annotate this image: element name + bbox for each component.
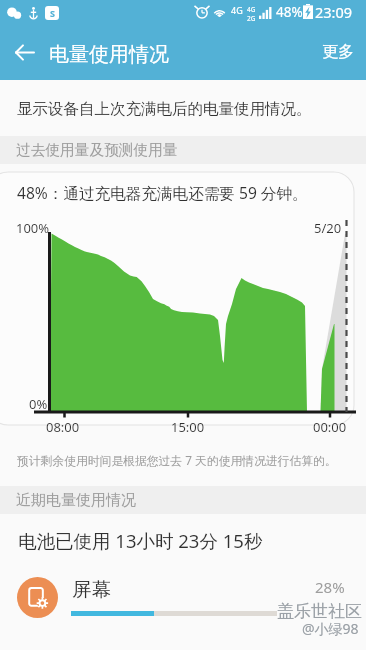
staticText: 00:00 (313, 418, 347, 436)
staticText: 显示设备自上次充满电后的电量使用情况。 (17, 99, 312, 119)
staticText: 盖乐世社区 (277, 601, 362, 622)
staticText: 48% (276, 3, 303, 21)
staticText: 电量使用情况 (49, 42, 169, 67)
staticText: @小绿98 (302, 619, 359, 638)
staticText: 更多 (322, 42, 354, 62)
staticText: 预计剩余使用时间是根据您过去 7 天的使用情况进行估算的。 (17, 452, 337, 468)
staticText: 48%：通过充电器充满电还需要 59 分钟。 (17, 182, 308, 203)
button[interactable]: Back (4, 32, 45, 73)
staticText: S (50, 7, 55, 19)
staticText: 2G (247, 14, 256, 23)
staticText: 近期电量使用情况 (16, 491, 136, 510)
staticText: 23:09 (315, 2, 353, 22)
staticText: 4G (247, 5, 256, 14)
staticText: 15:00 (171, 418, 205, 436)
staticText: 屏幕 (72, 577, 111, 602)
button[interactable]: 屏幕 (0, 566, 366, 630)
staticText: 电池已使用 13小时 23分 15秒 (18, 528, 263, 553)
staticText: 过去使用量及预测使用量 (16, 141, 178, 160)
staticText: 08:00 (46, 418, 80, 436)
button[interactable]: 更多 (310, 32, 366, 72)
staticText: 100% (16, 219, 50, 237)
staticText: 0% (29, 395, 48, 413)
staticText: 28% (315, 577, 345, 597)
staticText: 4G (231, 4, 243, 16)
staticText: 5/20 (314, 219, 342, 237)
